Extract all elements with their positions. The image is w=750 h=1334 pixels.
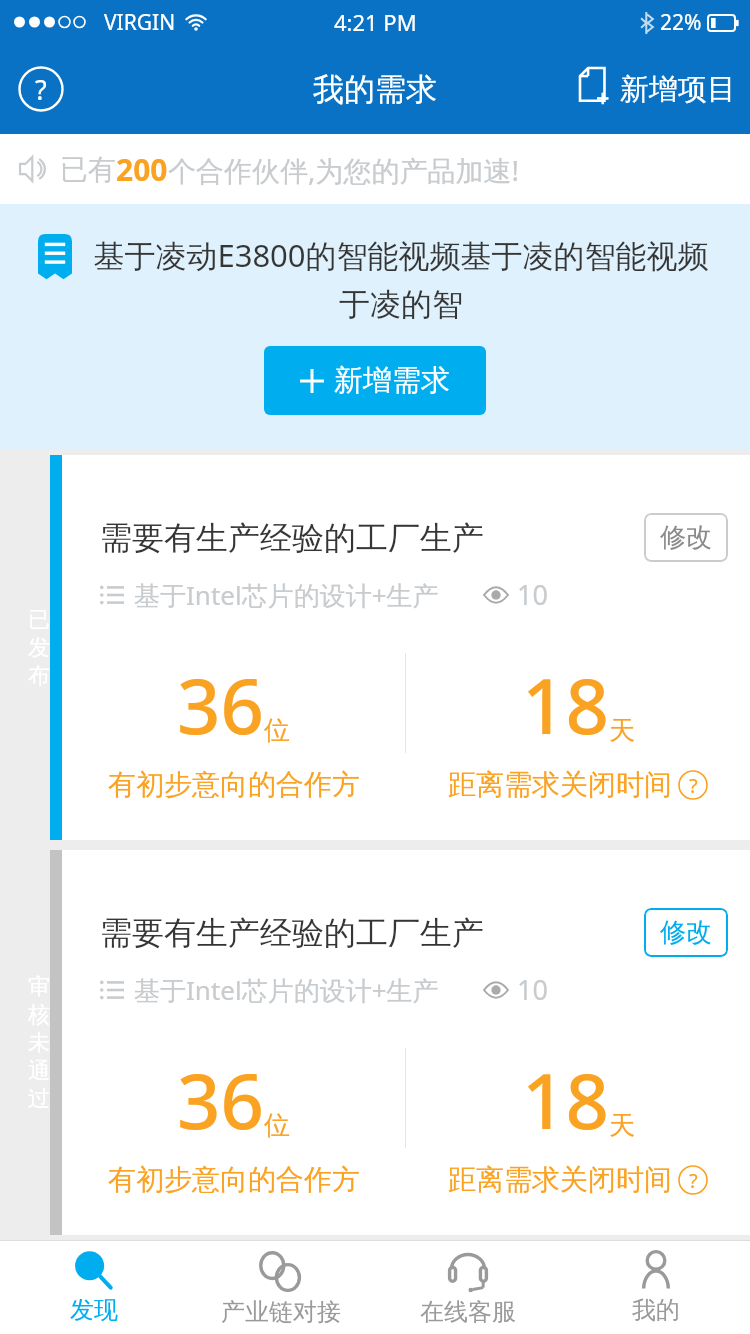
staticText: 基于Intel芯片的设计+生产 xyxy=(134,577,439,613)
staticText: 个合作伙伴,为您的产品加速! xyxy=(168,151,520,189)
staticText: 距离需求关闭时间 xyxy=(448,767,672,802)
staticText: 新增项目 xyxy=(620,71,736,108)
button[interactable]: 新增需求 xyxy=(264,346,486,415)
staticText: 基于Intel芯片的设计+生产 xyxy=(134,972,439,1008)
staticText: ? xyxy=(689,1167,698,1194)
staticText: 核 xyxy=(28,1001,50,1029)
button[interactable]: 需要有生产经验的工厂生产 xyxy=(50,455,750,840)
staticText: 位 xyxy=(264,1109,290,1142)
staticText: 基于凌动E3800的智能视频基于凌的智能视频于凌的智 xyxy=(90,234,712,324)
button[interactable]: 修改 xyxy=(644,908,728,957)
button[interactable]: 需要有生产经验的工厂生产 xyxy=(50,850,750,1235)
staticText: 有初步意向的合作方 xyxy=(108,1162,360,1197)
staticText: 天 xyxy=(609,714,635,747)
staticText: 在线客服 xyxy=(420,1297,516,1327)
button[interactable]: Help xyxy=(18,66,64,112)
button[interactable]: 已有 xyxy=(18,134,750,204)
staticText: 有初步意向的合作方 xyxy=(108,767,360,802)
staticText: 通 xyxy=(28,1057,50,1085)
staticText: ? xyxy=(689,772,698,799)
staticText: 22% xyxy=(660,8,702,37)
staticText: 36 xyxy=(177,1048,264,1152)
staticText: 距离需求关闭时间 xyxy=(448,1162,672,1197)
staticText: 发现 xyxy=(70,1295,118,1325)
staticText: 18 xyxy=(522,1048,609,1152)
staticText: 未 xyxy=(28,1029,50,1057)
staticText: 新增需求 xyxy=(334,362,450,399)
button[interactable]: Help xyxy=(678,770,708,800)
button[interactable]: 在线客服 xyxy=(374,1241,562,1334)
staticText: 200 xyxy=(116,149,168,190)
staticText: 已 xyxy=(28,606,50,634)
staticText: VIRGIN xyxy=(104,8,176,37)
staticText: 发 xyxy=(28,634,50,662)
button[interactable]: 新增项目 xyxy=(580,68,750,110)
staticText: 18 xyxy=(522,653,609,757)
staticText: 布 xyxy=(28,662,50,690)
staticText: 过 xyxy=(28,1085,50,1113)
staticText: 天 xyxy=(609,1109,635,1142)
button[interactable]: 发现 xyxy=(0,1241,187,1334)
staticText: 产业链对接 xyxy=(221,1297,341,1327)
staticText: 10 xyxy=(517,971,548,1008)
staticText: 已有 xyxy=(60,152,116,187)
staticText: 审 xyxy=(28,973,50,1001)
staticText: 10 xyxy=(517,576,548,613)
staticText: 修改 xyxy=(660,521,712,554)
button[interactable]: 我的 xyxy=(562,1241,750,1334)
staticText: 36 xyxy=(177,653,264,757)
staticText: 我的需求 xyxy=(313,70,437,109)
button[interactable]: 产业链对接 xyxy=(187,1241,374,1334)
staticText: 需要有生产经验的工厂生产 xyxy=(100,913,644,953)
staticText: 修改 xyxy=(660,916,712,949)
button[interactable]: 修改 xyxy=(644,513,728,562)
button[interactable]: Help xyxy=(678,1165,708,1195)
staticText: 4:21 PM xyxy=(334,7,417,37)
staticText: 位 xyxy=(264,714,290,747)
staticText: ? xyxy=(35,71,47,108)
staticText: 需要有生产经验的工厂生产 xyxy=(100,518,644,558)
staticText: 我的 xyxy=(632,1295,680,1325)
